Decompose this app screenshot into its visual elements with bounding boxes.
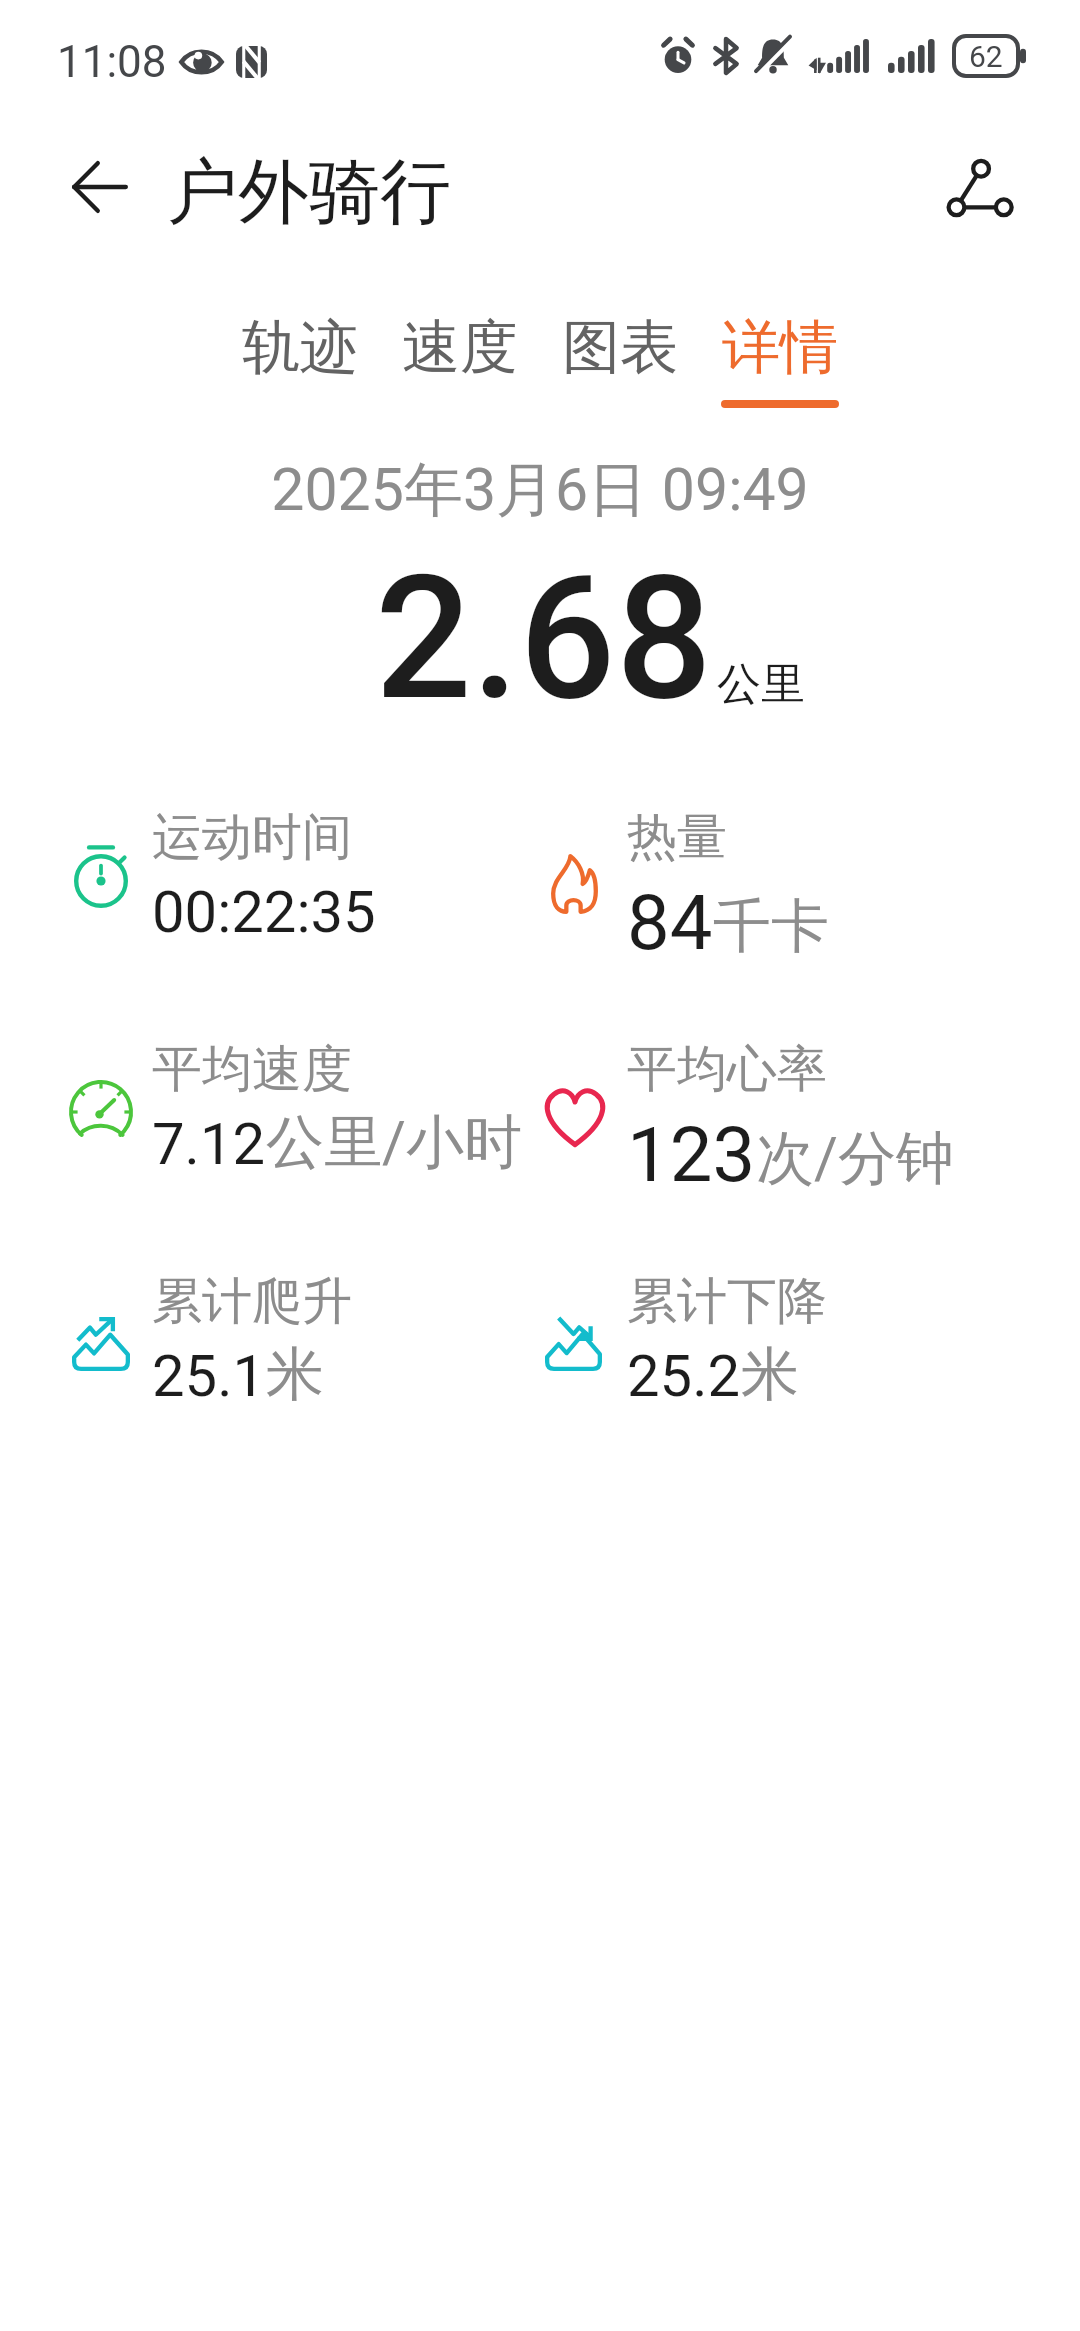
staticText: 00:22:35 <box>152 878 376 946</box>
staticText: 2025年3月6日 09:49 <box>0 453 1080 527</box>
staticText: 米 <box>741 1338 799 1411</box>
button[interactable]: 分享 <box>927 136 1031 240</box>
staticText: 速度 <box>402 311 518 384</box>
staticText: 62 <box>969 39 1003 74</box>
staticText: 25.1 <box>152 1342 266 1410</box>
staticText: 米 <box>266 1338 324 1411</box>
staticText: 千卡 <box>713 890 829 963</box>
staticText: 平均心率 <box>627 1038 827 1101</box>
staticText: 详情 <box>722 311 838 384</box>
staticText: 84 <box>627 878 713 967</box>
staticText: 轨迹 <box>242 311 358 384</box>
button[interactable]: 图表 <box>540 311 700 408</box>
staticText: 累计爬升 <box>152 1270 352 1333</box>
staticText: 平均速度 <box>152 1038 352 1101</box>
staticText: 公里/小时 <box>266 1106 522 1179</box>
staticText: 公里 <box>717 657 805 712</box>
staticText: 图表 <box>562 311 678 384</box>
staticText: 123 <box>627 1110 756 1199</box>
staticText: 11:08 <box>57 36 167 88</box>
staticText: 7.12 <box>152 1110 266 1178</box>
button[interactable]: 轨迹 <box>220 311 380 408</box>
button[interactable]: 返回 <box>44 131 156 243</box>
staticText: 25.2 <box>627 1342 741 1410</box>
staticText: 热量 <box>627 806 727 869</box>
staticText: 次/分钟 <box>756 1122 954 1195</box>
staticText: 户外骑行 <box>167 148 451 237</box>
staticText: 累计下降 <box>627 1270 827 1333</box>
button[interactable]: 速度 <box>380 311 540 408</box>
staticText: 运动时间 <box>152 806 352 869</box>
button[interactable]: 详情 <box>700 311 860 408</box>
staticText: 2.68 <box>375 539 713 738</box>
